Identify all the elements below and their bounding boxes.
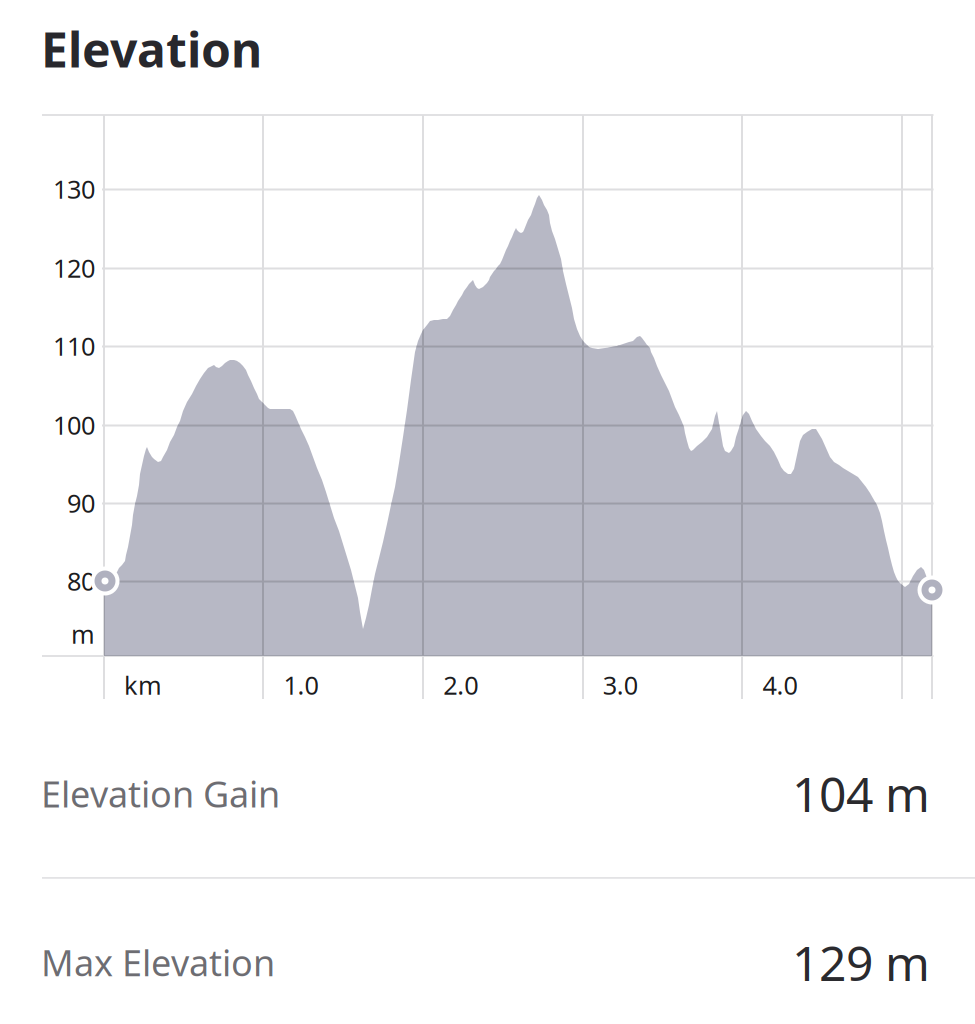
button[interactable]: Max Elevation [0, 879, 975, 1024]
staticText: 130 [53, 172, 95, 206]
staticText: 2.0 [443, 668, 478, 702]
staticText: 1.0 [284, 668, 319, 702]
staticText: 110 [53, 329, 95, 363]
staticText: 4.0 [762, 668, 797, 702]
staticText: 104 m [792, 762, 930, 825]
staticText: 3.0 [603, 668, 638, 702]
staticText: 90 [67, 486, 95, 520]
staticText: Elevation Gain [41, 770, 280, 817]
staticText: 129 m [792, 930, 930, 994]
staticText: Elevation [41, 17, 262, 81]
staticText: m [71, 617, 95, 651]
staticText: 100 [53, 408, 95, 442]
staticText: 120 [53, 251, 95, 285]
staticText: km [124, 668, 162, 702]
staticText: 80 [67, 564, 95, 598]
button[interactable]: Elevation Gain [0, 710, 975, 877]
staticText: Max Elevation [41, 938, 275, 986]
